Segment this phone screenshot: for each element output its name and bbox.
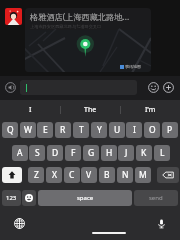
button[interactable]: Switch language — [14, 218, 25, 229]
staticText: J — [125, 147, 128, 159]
button[interactable]: A — [12, 145, 28, 161]
button[interactable] — [20, 80, 137, 95]
button[interactable]: L — [154, 145, 170, 161]
button[interactable]: Backspace — [157, 167, 179, 183]
button[interactable]: N — [117, 167, 133, 183]
staticText: U — [114, 124, 121, 136]
staticText: O — [149, 124, 156, 136]
staticText: W — [24, 124, 32, 136]
button[interactable]: Voice input — [5, 82, 16, 93]
button[interactable]: More — [163, 82, 174, 93]
staticText: Y — [97, 124, 102, 136]
button[interactable]: space — [38, 190, 132, 206]
staticText: V — [86, 169, 92, 181]
staticText: K — [141, 147, 147, 159]
button[interactable]: J — [118, 145, 134, 161]
button[interactable]: R — [55, 122, 71, 138]
staticText: F — [71, 147, 76, 159]
button[interactable]: I — [126, 122, 142, 138]
staticText: N — [122, 169, 129, 181]
staticText: T — [79, 124, 84, 136]
staticText: M — [139, 169, 147, 181]
staticText: 上海市静安区西藏北路与七浦路交叉口 — [30, 24, 102, 29]
staticText: X — [52, 169, 57, 181]
button[interactable]: G — [83, 145, 99, 161]
staticText: A — [17, 147, 23, 159]
staticText: C — [69, 169, 75, 181]
staticText: I'm — [145, 105, 156, 115]
button[interactable]: Q — [2, 122, 18, 138]
button[interactable]: T — [73, 122, 89, 138]
button[interactable]: W — [20, 122, 36, 138]
staticText: Q — [7, 124, 14, 136]
button[interactable]: I'm — [120, 100, 180, 120]
staticText: 腾讯地图 — [125, 64, 141, 69]
staticText: S — [35, 147, 40, 159]
button[interactable]: V — [81, 167, 97, 183]
button[interactable]: Y — [91, 122, 107, 138]
button[interactable]: Emoji — [148, 82, 159, 93]
staticText: 格雅酒店(上海西藏北路地... — [30, 11, 130, 22]
staticText: Z — [34, 169, 39, 181]
staticText: G — [88, 147, 95, 159]
button[interactable]: D — [47, 145, 63, 161]
button[interactable]: E — [37, 122, 53, 138]
button[interactable]: F — [65, 145, 81, 161]
button[interactable]: The — [60, 100, 120, 120]
staticText: D — [52, 147, 59, 159]
button[interactable]: P — [162, 122, 178, 138]
button[interactable]: O — [144, 122, 160, 138]
button[interactable]: Shift — [2, 167, 22, 183]
staticText: E — [43, 124, 48, 136]
staticText: I — [29, 105, 32, 115]
button[interactable]: send — [134, 190, 178, 206]
staticText: 123 — [6, 194, 17, 202]
staticText: R — [60, 124, 66, 136]
staticText: The — [84, 105, 97, 115]
staticText: send — [149, 194, 163, 202]
staticText: B — [104, 169, 110, 181]
button[interactable]: K — [136, 145, 152, 161]
button[interactable]: B — [99, 167, 115, 183]
button[interactable]: 123 — [2, 190, 21, 206]
button[interactable]: M — [135, 167, 151, 183]
button[interactable]: X — [46, 167, 62, 183]
button[interactable]: U — [109, 122, 125, 138]
button[interactable]: 格雅酒店(上海西藏北路地... — [25, 8, 151, 72]
button[interactable]: Avatar — [5, 8, 22, 25]
button[interactable]: H — [101, 145, 117, 161]
staticText: L — [160, 147, 165, 159]
staticText: H — [106, 147, 113, 159]
staticText: P — [167, 124, 173, 136]
button[interactable]: Z — [28, 167, 44, 183]
button[interactable]: Emoji keyboard — [22, 190, 36, 206]
staticText: space — [77, 194, 94, 202]
button[interactable]: S — [29, 145, 45, 161]
button[interactable]: Dictation — [156, 218, 167, 229]
staticText: I — [133, 124, 136, 136]
button[interactable]: I — [0, 100, 60, 120]
button[interactable]: C — [64, 167, 80, 183]
